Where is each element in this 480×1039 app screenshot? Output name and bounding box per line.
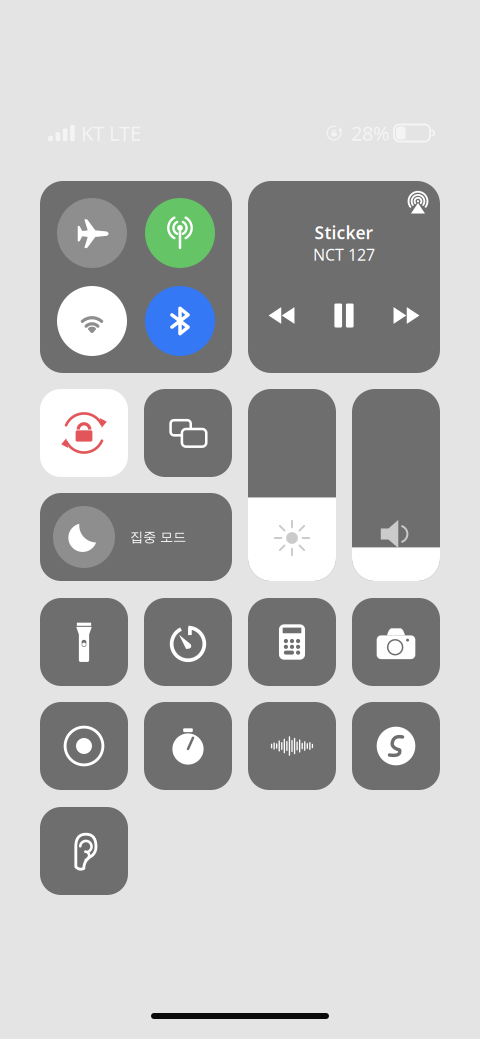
staticText: Sticker (314, 221, 373, 244)
button[interactable]: Timer (144, 598, 232, 686)
button[interactable]: Shazam (352, 702, 440, 790)
button[interactable]: Airplane Mode (57, 198, 127, 268)
button[interactable]: Next (393, 302, 420, 329)
staticText: 28% (351, 120, 390, 146)
button[interactable]: Cellular Data (145, 198, 215, 268)
staticText: KT LTE (81, 120, 141, 146)
button[interactable]: Hearing (40, 807, 128, 895)
button[interactable]: Brightness (248, 389, 336, 581)
button[interactable]: Screen Mirroring (144, 389, 232, 477)
button[interactable]: 집중 모드 (40, 493, 232, 581)
button[interactable]: Bluetooth (145, 286, 215, 356)
staticText: NCT 127 (313, 244, 375, 265)
button[interactable]: Wi-Fi (57, 286, 127, 356)
button[interactable]: Camera (352, 598, 440, 686)
staticText: 집중 모드 (130, 529, 186, 545)
button[interactable]: Calculator (248, 598, 336, 686)
button[interactable]: Previous (268, 302, 295, 329)
button[interactable]: Pause (334, 303, 354, 327)
button[interactable]: Rotation Lock (40, 389, 128, 477)
button[interactable]: Screen Recording (40, 702, 128, 790)
button[interactable]: AirPlay (407, 181, 440, 214)
button[interactable]: Flashlight (40, 598, 128, 686)
button[interactable]: Sound Recognition (248, 702, 336, 790)
button[interactable]: Volume (352, 389, 440, 581)
button[interactable]: Stopwatch (144, 702, 232, 790)
